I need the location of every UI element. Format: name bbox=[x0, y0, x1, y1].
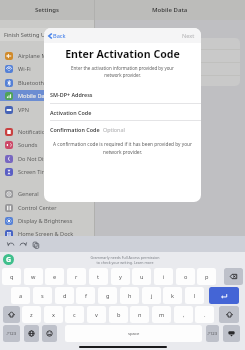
button[interactable]: Display & Brightness bbox=[0, 215, 94, 226]
staticText: Airplane Mode bbox=[18, 52, 57, 60]
button[interactable]: d bbox=[55, 287, 74, 304]
staticText: G bbox=[6, 255, 12, 265]
staticText: .?123 bbox=[6, 331, 17, 337]
button[interactable]: q bbox=[2, 268, 21, 285]
staticText: Sounds bbox=[18, 141, 38, 149]
staticText: o bbox=[184, 273, 188, 281]
staticText: q bbox=[10, 273, 14, 281]
button[interactable]: Emoji bbox=[42, 325, 57, 342]
staticText: Settings bbox=[35, 6, 59, 14]
button[interactable]: j bbox=[142, 287, 161, 304]
staticText: x bbox=[52, 311, 55, 319]
button[interactable]: f bbox=[76, 287, 95, 304]
button[interactable]: .?123 bbox=[206, 325, 219, 342]
staticText: e bbox=[53, 273, 57, 281]
button[interactable]: Notifications bbox=[0, 126, 94, 137]
staticText: j bbox=[151, 292, 153, 300]
button[interactable]: Return bbox=[209, 287, 239, 304]
staticText: r bbox=[75, 273, 78, 281]
staticText: Grammarly needs Full Access permission t… bbox=[60, 255, 190, 265]
button[interactable]: a bbox=[11, 287, 30, 304]
button[interactable]: Next keyboard bbox=[24, 325, 39, 342]
staticText: l bbox=[194, 292, 196, 300]
button[interactable]: r bbox=[67, 268, 86, 285]
button[interactable]: .?123 bbox=[3, 325, 20, 342]
staticText: Do Not Disturb bbox=[18, 155, 58, 163]
button[interactable]: Sounds bbox=[0, 139, 94, 150]
button[interactable]: Back bbox=[44, 30, 70, 42]
button[interactable]: Home Screen & Dock bbox=[0, 228, 94, 239]
button[interactable]: Airplane Mode bbox=[0, 50, 94, 61]
button[interactable]: Finish Setting Up bbox=[0, 28, 94, 41]
staticText: General bbox=[18, 190, 39, 198]
button[interactable]: i bbox=[154, 268, 173, 285]
button[interactable]: Do Not Disturb bbox=[0, 153, 94, 164]
button[interactable]: Control Center bbox=[0, 202, 94, 213]
staticText: Optional bbox=[103, 126, 125, 133]
staticText: Enter Activation Code bbox=[44, 47, 201, 61]
button[interactable]: n bbox=[130, 306, 149, 323]
button[interactable]: VPN bbox=[0, 104, 94, 115]
button[interactable]: Shift bbox=[219, 306, 239, 323]
staticText: p bbox=[205, 273, 209, 281]
button[interactable]: x bbox=[44, 306, 63, 323]
button[interactable]: SM-DP+ Address bbox=[44, 85, 201, 103]
button[interactable]: k bbox=[163, 287, 182, 304]
staticText: c bbox=[73, 311, 76, 319]
button[interactable]: , bbox=[174, 306, 193, 323]
button[interactable]: l bbox=[185, 287, 204, 304]
button[interactable]: Delete bbox=[224, 268, 243, 285]
button[interactable]: b bbox=[109, 306, 128, 323]
staticText: s bbox=[41, 292, 44, 300]
staticText: , bbox=[183, 311, 185, 319]
staticText: Control Center bbox=[18, 204, 57, 212]
button[interactable]: General bbox=[0, 188, 94, 199]
button[interactable]: v bbox=[87, 306, 106, 323]
button[interactable]: Shift bbox=[3, 306, 20, 323]
staticText: t bbox=[97, 273, 100, 281]
button[interactable]: h bbox=[120, 287, 139, 304]
button[interactable]: s bbox=[33, 287, 52, 304]
staticText: Wi-Fi bbox=[18, 65, 31, 73]
button[interactable]: p bbox=[197, 268, 216, 285]
staticText: Home Screen & Dock bbox=[18, 230, 74, 238]
staticText: f bbox=[85, 292, 87, 300]
staticText: . bbox=[204, 311, 206, 319]
button[interactable]: t bbox=[89, 268, 108, 285]
button[interactable]: Activation Code bbox=[44, 103, 201, 121]
staticText: z bbox=[30, 311, 33, 319]
staticText: w bbox=[31, 273, 36, 281]
button[interactable]: y bbox=[111, 268, 130, 285]
staticText: m bbox=[159, 311, 165, 319]
button[interactable]: m bbox=[152, 306, 171, 323]
staticText: k bbox=[171, 292, 174, 300]
button[interactable]: z bbox=[22, 306, 41, 323]
staticText: Mobile Data bbox=[18, 92, 50, 100]
button[interactable]: g bbox=[98, 287, 117, 304]
button[interactable]: Next bbox=[182, 29, 201, 43]
button[interactable]: Confirmation Code bbox=[44, 120, 201, 138]
staticText: Screen Time bbox=[18, 168, 51, 176]
button[interactable]: u bbox=[132, 268, 151, 285]
staticText: VPN bbox=[18, 106, 29, 114]
button[interactable]: Screen Time bbox=[0, 166, 94, 177]
staticText: Bluetooth bbox=[18, 79, 44, 87]
button[interactable]: Grammarly bbox=[3, 254, 14, 265]
staticText: Activation Code bbox=[50, 109, 92, 116]
button[interactable]: Undo bbox=[6, 240, 16, 250]
button[interactable]: Paste bbox=[31, 240, 41, 250]
button[interactable]: Hide keyboard bbox=[223, 325, 240, 342]
staticText: space bbox=[128, 331, 140, 337]
button[interactable]: w bbox=[24, 268, 43, 285]
button[interactable]: space bbox=[65, 325, 202, 342]
button[interactable]: Redo bbox=[18, 240, 28, 250]
button[interactable]: Bluetooth bbox=[0, 77, 94, 88]
button[interactable]: o bbox=[176, 268, 195, 285]
button[interactable]: c bbox=[65, 306, 84, 323]
button[interactable]: Mobile Data bbox=[0, 90, 94, 101]
button[interactable]: Wi-Fi bbox=[0, 63, 94, 74]
staticText: u bbox=[140, 273, 144, 281]
button[interactable]: . bbox=[195, 306, 214, 323]
button[interactable]: e bbox=[45, 268, 64, 285]
